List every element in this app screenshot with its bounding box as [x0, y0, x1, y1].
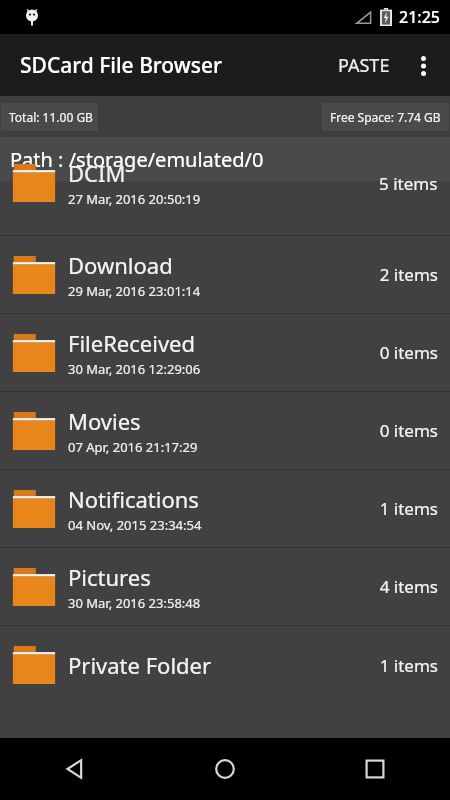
button[interactable]: Pictures [0, 548, 450, 626]
button[interactable]: More options [400, 43, 446, 89]
staticText: 27 Mar, 2016 20:50:19 [68, 190, 201, 208]
staticText: Path : /storage/emulated/0 [10, 146, 264, 173]
staticText: FileReceived [68, 328, 196, 358]
staticText: 30 Mar, 2016 12:29:06 [68, 360, 201, 378]
staticText: Download [68, 250, 173, 280]
staticText: 21:25 [399, 6, 440, 28]
button[interactable]: Download [0, 236, 450, 314]
button[interactable]: Recent apps [300, 738, 450, 800]
staticText: 04 Nov, 2015 23:34:54 [68, 516, 202, 534]
staticText: DCIM [68, 158, 126, 188]
staticText: Total: 11.00 GB [9, 109, 93, 125]
staticText: 2 items [379, 263, 438, 286]
button[interactable]: Movies [0, 392, 450, 470]
staticText: Notifications [68, 484, 199, 514]
button[interactable]: Home [150, 738, 300, 800]
staticText: 5 items [379, 172, 438, 195]
staticText: Pictures [68, 562, 151, 592]
button[interactable]: Private Folder [0, 626, 450, 704]
staticText: SDCard File Browser [20, 51, 222, 80]
button[interactable]: PASTE [328, 41, 400, 90]
button[interactable]: Back [0, 738, 150, 800]
staticText: 0 items [379, 341, 438, 364]
staticText: Free Space: 7.74 GB [330, 109, 441, 125]
staticText: 07 Apr, 2016 21:17:29 [68, 438, 198, 456]
staticText: Private Folder [68, 650, 212, 680]
button[interactable]: Notifications [0, 470, 450, 548]
staticText: 30 Mar, 2016 23:58:48 [68, 594, 201, 612]
staticText: 0 items [379, 419, 438, 442]
staticText: 1 items [379, 654, 438, 677]
staticText: 4 items [379, 575, 438, 598]
staticText: 29 Mar, 2016 23:01:14 [68, 282, 201, 300]
staticText: 1 items [379, 497, 438, 520]
staticText: Movies [68, 406, 141, 436]
staticText: PASTE [338, 53, 390, 78]
button[interactable]: FileReceived [0, 314, 450, 392]
button[interactable]: DCIM [0, 181, 450, 236]
